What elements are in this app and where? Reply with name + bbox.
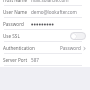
staticText: Host Name	[3, 0, 28, 3]
staticText: demo@lookafter.com	[31, 9, 77, 15]
staticText: User Name	[3, 9, 28, 15]
staticText: mail.solarize.com	[31, 0, 69, 3]
staticText: Server Port	[3, 57, 28, 63]
button[interactable]: Use SSL toggle	[70, 32, 86, 40]
staticText: Use SSL	[3, 33, 20, 39]
button[interactable]: Authentication	[0, 42, 90, 54]
button[interactable]: Password	[0, 18, 90, 30]
button[interactable]: Host Name	[0, 0, 90, 6]
staticText: Password	[60, 45, 81, 51]
button[interactable]: User Name	[0, 6, 90, 18]
button[interactable]: Use SSL	[0, 30, 90, 42]
button[interactable]: Server Port	[0, 54, 90, 66]
staticText: Password	[3, 21, 24, 27]
staticText: Authentication	[3, 45, 35, 51]
staticText: 587	[31, 57, 39, 63]
